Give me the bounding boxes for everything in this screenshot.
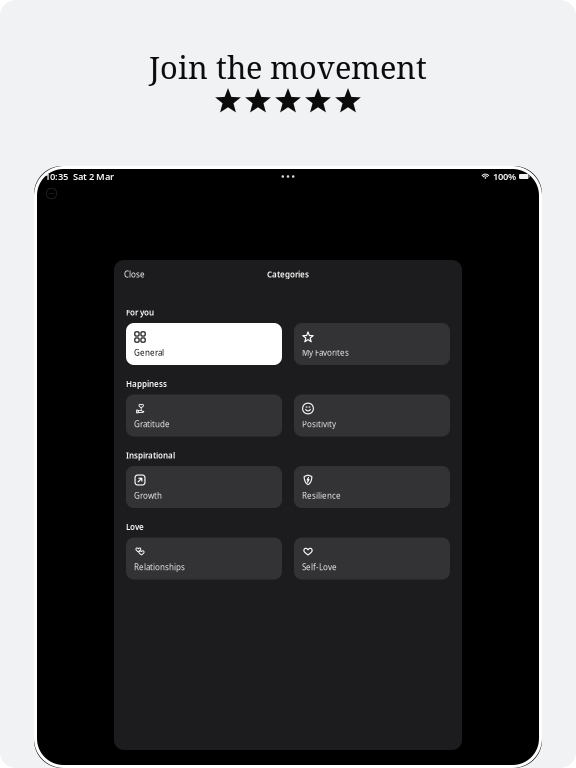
button[interactable]: Positivity bbox=[294, 394, 450, 436]
button[interactable]: Close bbox=[124, 269, 145, 280]
button[interactable]: Self-Love bbox=[294, 537, 450, 579]
button[interactable]: Growth bbox=[126, 466, 282, 508]
button[interactable]: Resilience bbox=[294, 466, 450, 508]
staticText: Close bbox=[124, 269, 145, 280]
staticText: Inspirational bbox=[126, 450, 175, 461]
staticText: Positivity bbox=[302, 419, 336, 429]
button[interactable]: Relationships bbox=[126, 537, 282, 579]
button[interactable]: My Favorites bbox=[294, 323, 450, 365]
staticText: Growth bbox=[134, 490, 162, 501]
staticText: My Favorites bbox=[302, 347, 349, 358]
staticText: Categories bbox=[267, 269, 309, 280]
staticText: Sat 2 Mar bbox=[73, 170, 114, 183]
button[interactable]: Gratitude bbox=[126, 394, 282, 436]
staticText: Happiness bbox=[126, 379, 167, 389]
staticText: Self-Love bbox=[302, 562, 337, 572]
staticText: 10:35 bbox=[45, 170, 68, 183]
staticText: Love bbox=[126, 522, 144, 532]
button[interactable]: General bbox=[126, 323, 282, 365]
staticText: Resilience bbox=[302, 490, 341, 501]
staticText: Relationships bbox=[134, 562, 185, 572]
staticText: General bbox=[134, 347, 164, 358]
staticText: For you bbox=[126, 307, 154, 318]
staticText: Join the movement bbox=[149, 46, 427, 88]
staticText: 100% bbox=[493, 170, 516, 183]
staticText: Gratitude bbox=[134, 419, 170, 429]
